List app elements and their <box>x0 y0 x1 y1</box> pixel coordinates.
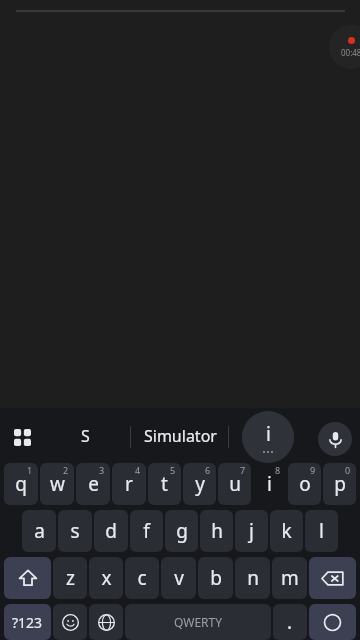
button[interactable]: h <box>200 510 233 552</box>
staticText: r <box>125 471 133 497</box>
button[interactable]: Shift <box>4 557 51 599</box>
button[interactable]: Simulator <box>134 422 226 450</box>
button[interactable]: g <box>165 510 198 552</box>
button[interactable]: ?123 <box>4 604 51 640</box>
staticText: a <box>34 518 45 544</box>
staticText: p <box>334 471 346 497</box>
button[interactable]: . <box>273 604 307 640</box>
staticText: b <box>210 565 222 591</box>
staticText: 8 <box>275 464 281 476</box>
staticText: ?123 <box>12 613 43 632</box>
staticText: l <box>319 518 324 544</box>
button[interactable]: l <box>305 510 338 552</box>
staticText: t <box>161 471 168 497</box>
button[interactable]: i <box>253 463 286 505</box>
button[interactable]: Emoji <box>53 604 87 640</box>
staticText: x <box>101 565 112 591</box>
staticText: n <box>247 565 259 591</box>
button[interactable]: v <box>161 557 196 599</box>
staticText: q <box>15 471 27 497</box>
button[interactable]: y <box>183 463 216 505</box>
staticText: c <box>137 565 147 591</box>
staticText: . <box>287 609 293 635</box>
staticText: 1 <box>27 464 33 476</box>
staticText: 00:48 <box>341 47 360 58</box>
button[interactable]: c <box>125 557 159 599</box>
staticText: 5 <box>170 464 176 476</box>
button[interactable]: Apps <box>8 423 36 451</box>
staticText: i <box>266 421 271 447</box>
button[interactable]: a <box>22 510 56 552</box>
staticText: h <box>211 518 223 544</box>
button[interactable]: q <box>4 463 38 505</box>
button[interactable]: n <box>235 557 270 599</box>
button[interactable]: z <box>53 557 87 599</box>
button[interactable]: w <box>40 463 74 505</box>
staticText: 2 <box>63 464 69 476</box>
button[interactable]: j <box>235 510 268 552</box>
button[interactable]: Enter <box>309 604 356 640</box>
button[interactable]: Change language <box>89 604 123 640</box>
button[interactable]: r <box>112 463 146 505</box>
staticText: j <box>249 518 254 544</box>
staticText: e <box>88 471 99 497</box>
staticText: 7 <box>240 464 246 476</box>
staticText: g <box>176 518 188 544</box>
staticText: v <box>174 565 184 591</box>
button[interactable]: s <box>58 510 92 552</box>
button[interactable]: f <box>130 510 163 552</box>
button[interactable]: Voice input <box>318 422 352 456</box>
button[interactable]: t <box>148 463 181 505</box>
staticText: w <box>50 471 65 497</box>
button[interactable]: o <box>288 463 321 505</box>
button[interactable]: x <box>89 557 123 599</box>
button[interactable]: e <box>76 463 110 505</box>
button[interactable]: S <box>58 422 112 450</box>
button[interactable]: Backspace <box>309 557 356 599</box>
button[interactable]: m <box>272 557 307 599</box>
staticText: y <box>195 471 205 497</box>
staticText: 9 <box>310 464 316 476</box>
staticText: Simulator <box>144 425 217 447</box>
staticText: m <box>281 565 299 591</box>
staticText: k <box>281 518 292 544</box>
button[interactable]: Space <box>125 604 271 640</box>
staticText: 3 <box>99 464 105 476</box>
staticText: u <box>229 471 241 497</box>
staticText: f <box>143 518 150 544</box>
staticText: i <box>267 471 272 497</box>
button[interactable]: p <box>323 463 356 505</box>
button[interactable]: Recording 00:48 <box>329 25 360 69</box>
staticText: s <box>70 518 80 544</box>
button[interactable]: b <box>198 557 233 599</box>
staticText: S <box>81 425 90 447</box>
button[interactable]: More options <box>242 411 294 463</box>
staticText: QWERTY <box>174 614 223 630</box>
staticText: d <box>105 518 117 544</box>
button[interactable]: d <box>94 510 128 552</box>
staticText: 4 <box>135 464 141 476</box>
staticText: o <box>299 471 311 497</box>
button[interactable]: k <box>270 510 303 552</box>
button[interactable]: u <box>218 463 251 505</box>
staticText: 6 <box>205 464 211 476</box>
staticText: z <box>66 565 75 591</box>
staticText: 0 <box>345 464 351 476</box>
